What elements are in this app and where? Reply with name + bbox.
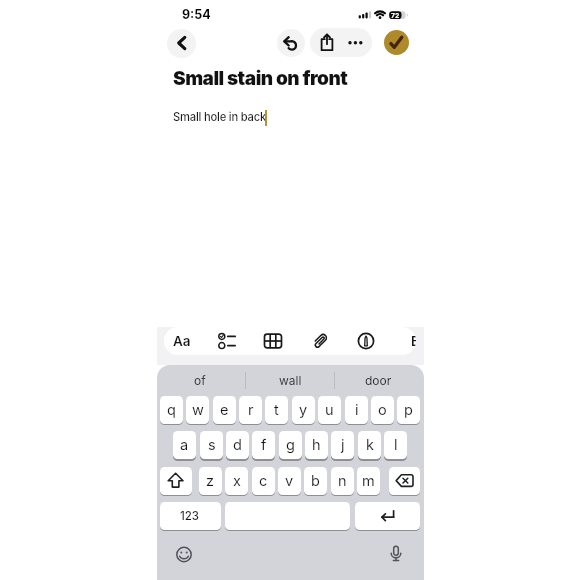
button[interactable] <box>389 467 420 495</box>
button[interactable] <box>225 502 350 530</box>
staticText: f <box>261 436 267 454</box>
staticText: m <box>362 472 375 490</box>
button[interactable]: t <box>265 396 288 424</box>
button[interactable]: o <box>371 396 394 424</box>
staticText: s <box>208 436 216 454</box>
button[interactable] <box>172 543 196 567</box>
staticText: p <box>404 401 413 419</box>
staticText: 72 <box>391 11 400 19</box>
button[interactable]: d <box>226 431 249 459</box>
staticText: door <box>365 373 392 388</box>
button[interactable]: of <box>140 368 260 392</box>
staticText: o <box>378 401 387 419</box>
staticText: of <box>194 373 206 388</box>
button[interactable]: z <box>199 467 222 495</box>
button[interactable]: p <box>397 396 420 424</box>
button[interactable] <box>356 331 376 351</box>
staticText: i <box>355 401 359 419</box>
button[interactable]: Aa <box>122 329 242 353</box>
staticText: 9:54 <box>182 7 211 22</box>
staticText: 123 <box>180 509 200 523</box>
staticText: z <box>206 472 215 490</box>
button[interactable] <box>160 502 221 530</box>
staticText: q <box>167 401 176 419</box>
button[interactable]: door <box>318 368 438 392</box>
staticText: n <box>338 472 347 490</box>
staticText: l <box>394 436 398 454</box>
button[interactable]: l <box>384 431 407 459</box>
button[interactable] <box>355 502 420 530</box>
button[interactable]: v <box>278 467 301 495</box>
button[interactable]: r <box>239 396 262 424</box>
button[interactable]: i <box>345 396 368 424</box>
button[interactable]: m <box>357 467 380 495</box>
button[interactable]: k <box>358 431 381 459</box>
button[interactable]: q <box>160 396 183 424</box>
button[interactable]: w <box>186 396 209 424</box>
staticText: t <box>274 401 279 419</box>
staticText: b <box>311 472 320 490</box>
button[interactable] <box>263 331 283 351</box>
staticText: a <box>180 436 189 454</box>
staticText: y <box>299 401 308 419</box>
staticText: d <box>233 436 242 454</box>
button[interactable] <box>384 543 408 567</box>
staticText: Small stain on front <box>173 67 348 90</box>
button[interactable]: a <box>173 431 196 459</box>
staticText: v <box>285 472 294 490</box>
staticText: r <box>248 401 254 419</box>
staticText: Small hole in back <box>173 110 267 124</box>
button[interactable]: wall <box>230 368 350 392</box>
button[interactable]: u <box>318 396 341 424</box>
button[interactable]: f <box>252 431 275 459</box>
staticText: g <box>286 436 295 454</box>
button[interactable] <box>384 30 409 55</box>
button[interactable] <box>310 28 372 57</box>
button[interactable] <box>277 29 305 57</box>
staticText: Aa <box>173 333 191 349</box>
staticText: x <box>233 472 241 490</box>
staticText: j <box>341 436 345 454</box>
button[interactable]: b <box>304 467 327 495</box>
staticText: wall <box>279 373 302 388</box>
button[interactable]: x <box>225 467 248 495</box>
staticText: u <box>325 401 334 419</box>
staticText: e <box>220 401 229 419</box>
button[interactable]: n <box>331 467 354 495</box>
button[interactable]: e <box>213 396 236 424</box>
button[interactable]: g <box>279 431 302 459</box>
staticText: k <box>366 436 374 454</box>
button[interactable] <box>310 331 330 351</box>
staticText: B <box>411 333 416 349</box>
button[interactable] <box>167 29 196 58</box>
staticText: w <box>192 401 204 419</box>
button[interactable]: h <box>305 431 328 459</box>
button[interactable]: y <box>292 396 315 424</box>
button[interactable]: s <box>200 431 223 459</box>
staticText: c <box>259 472 268 490</box>
staticText: h <box>312 436 321 454</box>
button[interactable] <box>160 467 192 495</box>
button[interactable]: c <box>252 467 275 495</box>
button[interactable] <box>217 331 237 351</box>
button[interactable]: j <box>331 431 354 459</box>
